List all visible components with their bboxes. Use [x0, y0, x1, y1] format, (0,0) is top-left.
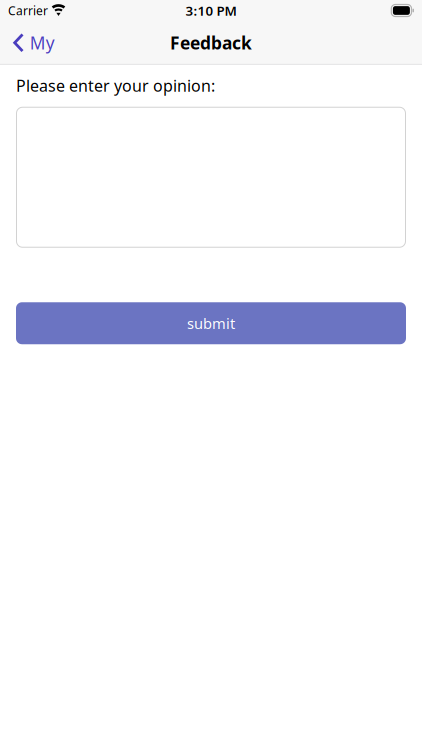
staticText: Please enter your opinion: [16, 75, 215, 96]
button[interactable]: Opinion text field [16, 107, 406, 248]
staticText: Carrier [8, 2, 48, 18]
staticText: My [30, 31, 55, 54]
staticText: submit [187, 313, 235, 333]
button[interactable]: submit [16, 302, 406, 344]
staticText: 3:10 PM [185, 2, 236, 19]
button[interactable]: My [0, 23, 86, 62]
staticText: Feedback [170, 31, 252, 54]
